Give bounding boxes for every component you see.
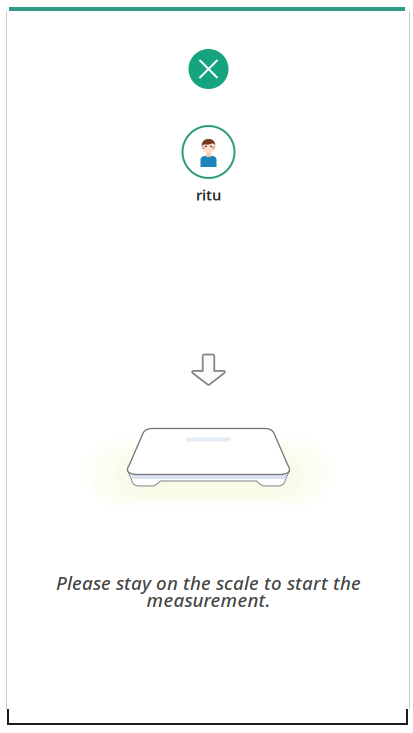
staticText: Please stay on the scale to start the (56, 570, 361, 595)
staticText: measurement. (146, 587, 270, 612)
button[interactable]: Close (188, 49, 228, 89)
button[interactable]: ritu (168, 126, 248, 204)
staticText: ritu (196, 185, 221, 204)
